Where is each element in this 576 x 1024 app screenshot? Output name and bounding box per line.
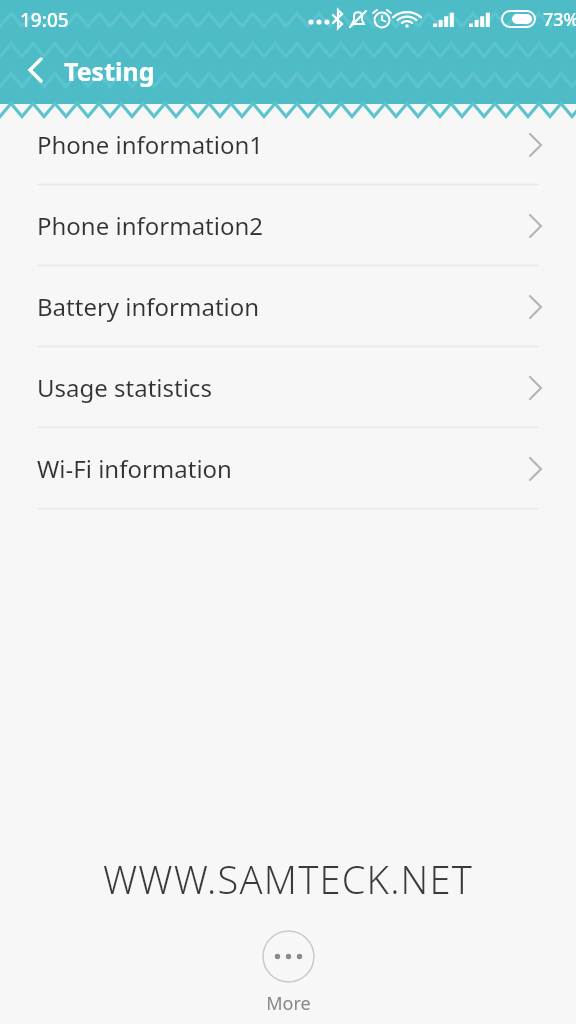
button[interactable]: Phone information2 bbox=[0, 185, 576, 266]
button[interactable]: More bbox=[233, 930, 343, 1016]
staticText: Testing bbox=[64, 54, 155, 88]
staticText: 73% bbox=[543, 7, 576, 32]
staticText: More bbox=[266, 991, 311, 1016]
button[interactable]: Back bbox=[14, 48, 58, 92]
button[interactable]: Wi-Fi information bbox=[0, 428, 576, 509]
staticText: Battery information bbox=[37, 290, 260, 323]
staticText: WWW.SAMTECK.NET bbox=[0, 853, 576, 905]
staticText: Usage statistics bbox=[37, 371, 212, 404]
button[interactable]: Phone information1 bbox=[0, 104, 576, 185]
staticText: 19:05 bbox=[20, 7, 69, 33]
button[interactable]: Usage statistics bbox=[0, 347, 576, 428]
staticText: Wi-Fi information bbox=[37, 452, 232, 485]
staticText: Phone information1 bbox=[37, 128, 264, 161]
button[interactable]: Battery information bbox=[0, 266, 576, 347]
staticText: Phone information2 bbox=[37, 209, 264, 242]
